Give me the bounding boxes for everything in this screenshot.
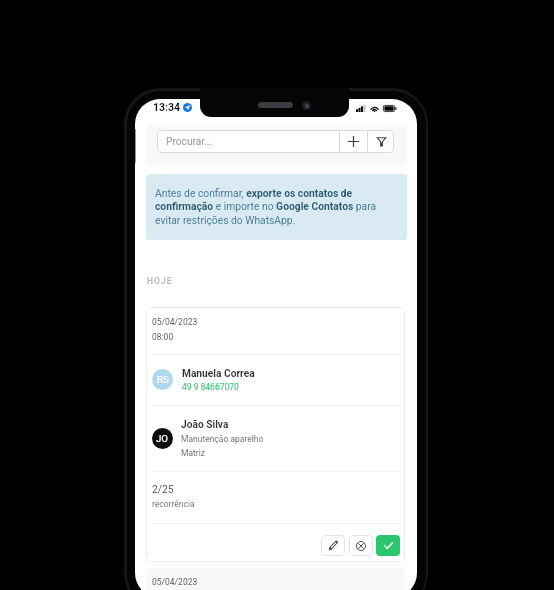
staticText: João Silva: [181, 419, 229, 431]
button[interactable]: Procurar...: [157, 130, 339, 153]
staticText: HOJE: [147, 276, 173, 286]
staticText: 05/04/2023: [152, 577, 198, 587]
other: Sinal: [356, 105, 366, 112]
staticText: 13:34: [153, 101, 181, 113]
staticText: Manuela Correa: [182, 368, 255, 380]
staticText: JO: [156, 433, 169, 444]
button[interactable]: Filtrar: [368, 130, 394, 153]
staticText: 2/25: [152, 484, 174, 496]
button[interactable]: 05/04/2023: [146, 307, 405, 562]
button[interactable]: 05/04/2023: [146, 568, 405, 590]
button[interactable]: Adicionar: [340, 130, 367, 153]
other: Bateria: [383, 105, 397, 112]
staticText: 49 9 84667070: [182, 382, 239, 392]
other: Wi-Fi: [370, 105, 379, 112]
staticText: Antes de confirmar, exporte os contatos …: [155, 187, 399, 227]
staticText: Procurar...: [166, 136, 213, 148]
staticText: 05/04/2023: [152, 317, 198, 327]
button[interactable]: Editar: [321, 535, 345, 556]
staticText: RS: [157, 374, 169, 385]
staticText: recorrência: [152, 499, 195, 509]
staticText: 08:00: [152, 332, 174, 342]
staticText: Manutenção aparelho: [181, 434, 264, 444]
button[interactable]: Confirmar: [376, 535, 400, 556]
staticText: Matriz: [181, 448, 205, 458]
button[interactable]: Cancelar: [349, 535, 373, 556]
